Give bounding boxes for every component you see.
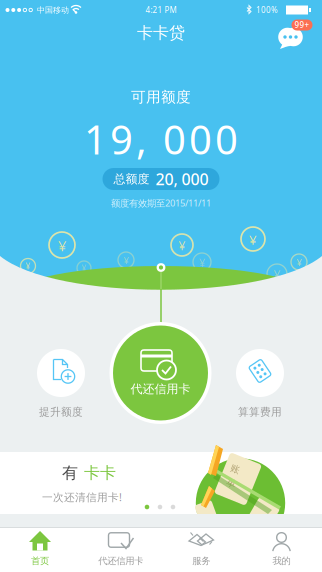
staticText: 首页 xyxy=(31,555,49,567)
staticText: 一次还清信用卡! xyxy=(42,490,122,504)
staticText: ¥ xyxy=(123,254,128,267)
staticText: 中国移动 xyxy=(37,5,69,15)
button[interactable]: 我的 xyxy=(241,527,322,572)
staticText: 额度有效期至2015/11/11 xyxy=(111,197,211,209)
staticText: 账 xyxy=(230,463,239,475)
staticText: 我的 xyxy=(272,555,290,567)
staticText: 有 xyxy=(62,463,78,483)
staticText: 卡卡贷 xyxy=(137,23,185,43)
staticText: 提升额度 xyxy=(39,405,83,418)
staticText: ¥ xyxy=(25,261,30,272)
staticText: 服务 xyxy=(192,555,210,567)
button[interactable]: 代还信用卡 xyxy=(80,527,161,572)
staticText: 总额度 xyxy=(113,172,149,186)
button[interactable]: 服务 xyxy=(161,527,241,572)
staticText: 代还信用卡 xyxy=(98,555,143,567)
staticText: ¥ xyxy=(273,266,280,282)
button[interactable]: 有 xyxy=(0,452,322,514)
staticText: ¥ xyxy=(58,236,66,255)
button[interactable]: 算算费用 xyxy=(225,345,295,423)
button[interactable]: Messages xyxy=(273,16,319,56)
staticText: 19, 000 xyxy=(84,112,238,165)
staticText: 算算费用 xyxy=(238,405,282,418)
staticText: ¥ xyxy=(81,263,86,274)
staticText: 单 xyxy=(226,477,235,489)
staticText: 卡卡 xyxy=(84,463,116,483)
staticText: 代还信用卡 xyxy=(130,382,190,396)
button[interactable]: 首页 xyxy=(0,527,80,572)
staticText: 20, 000 xyxy=(155,168,208,190)
staticText: 99+ xyxy=(294,20,309,30)
staticText: ¥ xyxy=(178,237,185,253)
staticText: 可用额度 xyxy=(131,88,191,106)
button[interactable]: 代还信用卡 xyxy=(108,321,212,425)
staticText: 4:21 PM xyxy=(145,5,176,15)
staticText: ¥ xyxy=(199,255,205,270)
button[interactable]: 提升额度 xyxy=(26,345,96,423)
staticText: ¥ xyxy=(249,231,257,248)
staticText: ¥ xyxy=(296,256,301,269)
staticText: 100% xyxy=(256,5,278,15)
